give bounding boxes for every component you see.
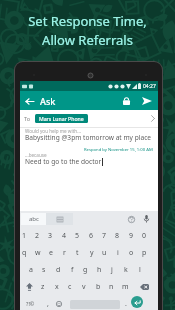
staticText: x — [55, 282, 59, 292]
button[interactable]: w — [31, 244, 44, 261]
staticText: j — [111, 265, 113, 275]
button[interactable]: o — [125, 244, 138, 261]
staticText: a — [29, 265, 33, 275]
staticText: . — [125, 299, 127, 309]
button[interactable]: Emoji — [52, 295, 66, 310]
staticText: r — [63, 248, 66, 258]
staticText: 6 — [89, 231, 94, 241]
staticText: u — [102, 248, 107, 258]
staticText: d — [56, 265, 61, 275]
button[interactable]: 7 — [98, 227, 111, 244]
button[interactable]: 8 — [111, 227, 124, 244]
button[interactable]: y — [85, 244, 98, 261]
staticText: b — [96, 282, 101, 292]
button[interactable]: v — [77, 278, 91, 295]
button[interactable]: Enter — [131, 296, 143, 308]
button[interactable]: Lock — [117, 92, 135, 110]
staticText: Mars Lunar Phone — [39, 115, 84, 122]
button[interactable]: c — [63, 278, 77, 295]
staticText: w — [35, 248, 41, 258]
staticText: y — [90, 248, 94, 258]
staticText: ...because — [25, 152, 47, 158]
button[interactable]: ?!© — [23, 295, 37, 310]
button[interactable]: k — [119, 261, 133, 278]
staticText: v — [82, 282, 86, 292]
button[interactable]: 2 — [31, 227, 44, 244]
button[interactable]: 6 — [85, 227, 98, 244]
staticText: 0 — [142, 231, 147, 241]
staticText: p — [142, 248, 147, 258]
button[interactable]: 4 — [58, 227, 71, 244]
staticText: ?!© — [26, 300, 35, 307]
staticText: 3 — [48, 231, 53, 241]
button[interactable]: m — [118, 278, 132, 295]
staticText: Need to go to the doctor — [25, 157, 102, 166]
staticText: To — [24, 115, 31, 122]
button[interactable]: q — [18, 244, 31, 261]
button[interactable]: Shift — [21, 278, 37, 295]
staticText: m — [122, 282, 129, 292]
button[interactable]: , — [41, 295, 55, 310]
button[interactable]: h — [92, 261, 106, 278]
staticText: e — [49, 248, 53, 258]
button[interactable]: l — [133, 261, 147, 278]
button[interactable]: s — [37, 261, 51, 278]
staticText: 1 — [22, 231, 27, 241]
staticText: c — [68, 282, 72, 292]
button[interactable]: Help — [124, 211, 138, 227]
staticText: 04:27 — [143, 83, 156, 90]
button[interactable]: t — [71, 244, 84, 261]
staticText: Set Response Time, — [28, 12, 147, 30]
staticText: , — [47, 299, 49, 309]
button[interactable]: j — [105, 261, 119, 278]
staticText: t — [76, 248, 79, 258]
button[interactable]: Send — [138, 92, 156, 110]
button[interactable]: Backspace — [136, 278, 152, 295]
staticText: h — [97, 265, 102, 275]
button[interactable]: Back — [20, 92, 38, 110]
button[interactable]: abc — [21, 213, 46, 225]
staticText: Ask — [40, 95, 56, 107]
staticText: 2 — [35, 231, 40, 241]
button[interactable]: d — [51, 261, 65, 278]
button[interactable]: 5 — [71, 227, 84, 244]
button[interactable]: u — [98, 244, 111, 261]
button[interactable]: n — [104, 278, 118, 295]
button[interactable]: a — [24, 261, 38, 278]
button[interactable]: i — [111, 244, 124, 261]
staticText: o — [129, 248, 134, 258]
staticText: 9 — [129, 231, 134, 241]
button[interactable]: e — [44, 244, 57, 261]
staticText: l — [139, 265, 141, 275]
staticText: i — [117, 248, 119, 258]
staticText: f — [71, 265, 74, 275]
button[interactable]: x — [50, 278, 64, 295]
staticText: Respond by November 15, 1:00 AM — [84, 147, 153, 153]
button[interactable]: r — [58, 244, 71, 261]
button[interactable]: 1 — [18, 227, 31, 244]
button[interactable]: p — [138, 244, 151, 261]
staticText: k — [124, 265, 128, 275]
staticText: abc — [29, 215, 39, 223]
staticText: 7 — [102, 231, 107, 241]
button[interactable]: z — [36, 278, 50, 295]
button[interactable]: 9 — [125, 227, 138, 244]
button[interactable]: g — [78, 261, 92, 278]
button[interactable]: 3 — [44, 227, 57, 244]
button[interactable]: To — [20, 110, 158, 127]
button[interactable]: Voice input — [139, 211, 153, 227]
button[interactable]: 0 — [138, 227, 151, 244]
staticText: n — [109, 282, 114, 292]
staticText: s — [42, 265, 46, 275]
staticText: Would you help me with... — [25, 128, 81, 134]
staticText: Babysitting @3pm tomorrow at my place — [25, 133, 152, 142]
staticText: Allow Referrals — [42, 31, 133, 49]
button[interactable]: Keyboard layout — [46, 213, 73, 225]
button[interactable]: b — [91, 278, 105, 295]
staticText: g — [83, 265, 88, 275]
staticText: 4 — [62, 231, 67, 241]
button[interactable]: f — [65, 261, 79, 278]
button[interactable]: . — [120, 295, 132, 310]
staticText: 5 — [75, 231, 80, 241]
